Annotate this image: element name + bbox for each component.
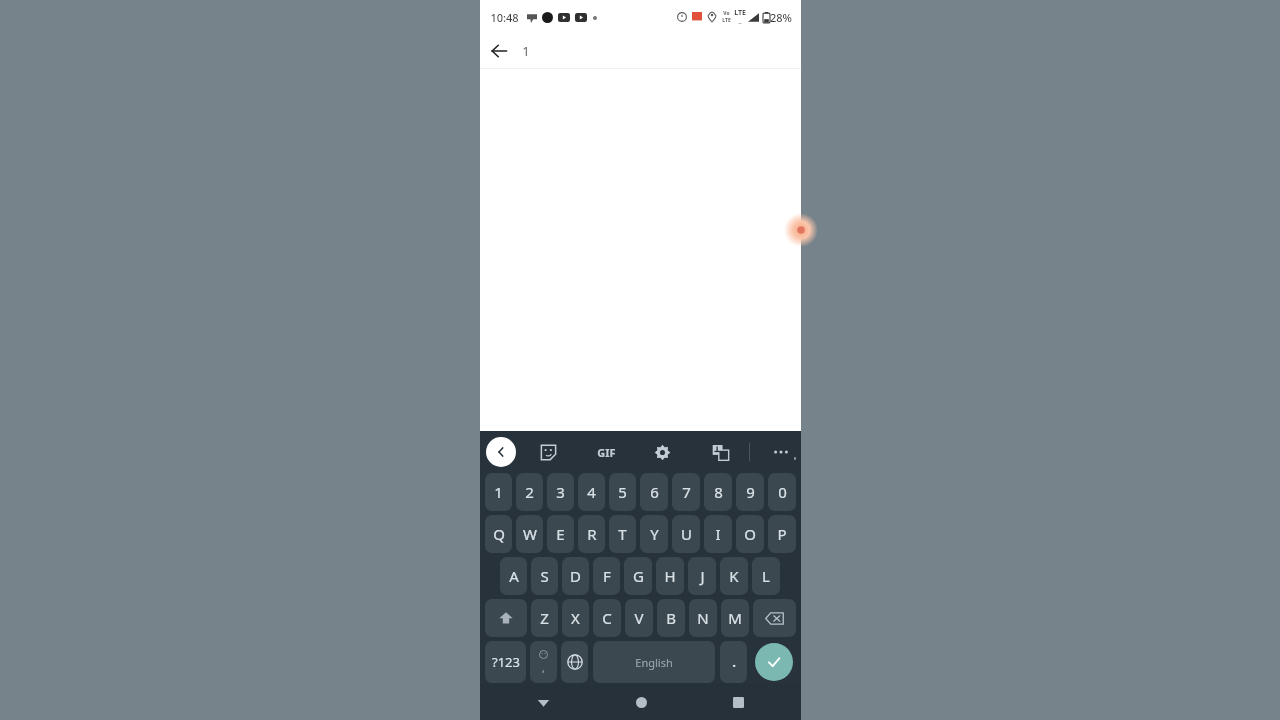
button[interactable]: Change language — [561, 641, 588, 683]
button[interactable]: More options — [767, 437, 795, 467]
staticText: F — [603, 566, 611, 586]
staticText: 1 — [494, 482, 503, 502]
button[interactable]: 2 — [516, 473, 543, 511]
button[interactable]: I — [704, 515, 732, 553]
staticText: G — [633, 566, 644, 586]
staticText: V — [634, 608, 644, 628]
staticText: 5 — [618, 482, 627, 502]
button[interactable]: S — [531, 557, 558, 595]
staticText: 8 — [714, 482, 723, 502]
button[interactable]: Recents — [721, 685, 755, 719]
button[interactable]: G — [624, 557, 652, 595]
button[interactable]: ?123 — [485, 641, 526, 683]
button[interactable]: 5 — [609, 473, 636, 511]
staticText: S — [540, 566, 549, 586]
button[interactable]: A — [500, 557, 527, 595]
button[interactable]: P — [768, 515, 796, 553]
staticText: P — [777, 524, 787, 544]
button[interactable]: 4 — [578, 473, 605, 511]
staticText: 1 — [522, 42, 530, 60]
button[interactable]: Translate — [705, 437, 735, 467]
button[interactable]: Back — [526, 685, 560, 719]
button[interactable]: O — [736, 515, 764, 553]
button[interactable]: Home — [624, 685, 658, 719]
staticText: 0 — [778, 482, 787, 502]
button[interactable]: Floating bubble — [784, 213, 818, 247]
staticText: E — [556, 524, 565, 544]
button[interactable]: T — [609, 515, 636, 553]
button[interactable]: Back — [480, 34, 518, 68]
button[interactable]: GIF — [591, 437, 621, 467]
button[interactable]: Stickers — [533, 437, 563, 467]
button[interactable]: Backspace — [753, 599, 796, 637]
staticText: 6 — [650, 482, 659, 502]
staticText: R — [587, 524, 597, 544]
staticText: Q — [493, 524, 505, 544]
button[interactable]: D — [562, 557, 589, 595]
staticText: 28% — [770, 10, 792, 25]
button[interactable]: 6 — [640, 473, 668, 511]
button[interactable]: K — [720, 557, 748, 595]
button[interactable]: E — [547, 515, 574, 553]
button[interactable]: 3 — [547, 473, 574, 511]
button[interactable]: 9 — [736, 473, 764, 511]
staticText: L — [762, 566, 770, 586]
button[interactable]: 8 — [704, 473, 732, 511]
button[interactable]: C — [593, 599, 621, 637]
staticText: J — [700, 566, 705, 586]
button[interactable]: N — [689, 599, 717, 637]
button[interactable]: Z — [531, 599, 558, 637]
button[interactable]: 0 — [768, 473, 796, 511]
staticText: I — [715, 524, 721, 544]
button[interactable]: . — [720, 641, 747, 683]
staticText: D — [570, 566, 581, 586]
button[interactable]: F — [593, 557, 620, 595]
button[interactable]: W — [516, 515, 543, 553]
staticText: 3 — [556, 482, 565, 502]
staticText: U — [681, 524, 692, 544]
button[interactable]: X — [562, 599, 589, 637]
button[interactable]: R — [578, 515, 605, 553]
button[interactable]: J — [688, 557, 716, 595]
staticText: 7 — [682, 482, 691, 502]
button[interactable]: Enter — [755, 643, 793, 681]
staticText: X — [571, 608, 580, 628]
staticText: M — [728, 608, 742, 628]
button[interactable]: Shift — [485, 599, 527, 637]
staticText: , — [542, 661, 545, 675]
button[interactable]: Emoji and comma — [530, 641, 557, 683]
staticText: 2 — [525, 482, 534, 502]
staticText: T — [618, 524, 627, 544]
staticText: LTE — [722, 17, 731, 24]
staticText: . — [732, 653, 736, 671]
button[interactable]: Settings — [647, 437, 677, 467]
staticText: N — [697, 608, 709, 628]
button[interactable]: 7 — [672, 473, 700, 511]
button[interactable]: U — [672, 515, 700, 553]
button[interactable]: L — [752, 557, 780, 595]
staticText: A — [509, 566, 519, 586]
staticText: O — [744, 524, 756, 544]
staticText: C — [602, 608, 612, 628]
button[interactable]: H — [656, 557, 684, 595]
button[interactable]: B — [657, 599, 685, 637]
staticText: B — [666, 608, 676, 628]
staticText: 4 — [587, 482, 596, 502]
staticText: 9 — [746, 482, 755, 502]
staticText: W — [523, 524, 537, 544]
button[interactable]: M — [721, 599, 749, 637]
button[interactable]: Y — [640, 515, 668, 553]
staticText: GIF — [597, 445, 616, 460]
staticText: H — [664, 566, 676, 586]
staticText: English — [635, 655, 673, 670]
button[interactable]: Expand toolbar — [486, 437, 516, 467]
button[interactable]: Q — [485, 515, 512, 553]
staticText: K — [729, 566, 739, 586]
button[interactable]: 1 — [485, 473, 512, 511]
staticText: 10:48 — [490, 10, 519, 25]
button[interactable]: English — [593, 641, 715, 683]
staticText: Z — [540, 608, 549, 628]
staticText: LTE — [734, 8, 746, 18]
staticText: Y — [650, 524, 659, 544]
button[interactable]: V — [625, 599, 653, 637]
